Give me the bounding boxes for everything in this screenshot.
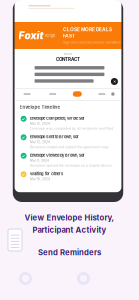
staticText: Envelope Timeline [20, 105, 61, 110]
staticText: Envelope Completed, Wrote sdr [30, 116, 85, 121]
staticText: Recipient opened the envelope on a mobil… [30, 164, 112, 167]
button[interactable]: ✓ [15, 169, 121, 188]
staticText: Mar 12, 2024 [30, 122, 50, 125]
staticText: Mar 12, 2024 [30, 140, 50, 144]
staticText: CONTRACT [56, 57, 80, 62]
staticText: ✓ [22, 135, 26, 140]
staticText: Sign and send documents anywhere [63, 41, 121, 44]
staticText: eSign [45, 33, 55, 38]
staticText: View Envelope History, [24, 213, 114, 222]
staticText: Envelope Viewed by Brown, sdr [30, 153, 85, 158]
staticText: Mar 10, 2024 [30, 177, 50, 181]
button[interactable]: ✓ [15, 132, 121, 151]
button[interactable]: Recipients [47, 91, 58, 97]
staticText: FAST [63, 33, 75, 39]
staticText: Envelope was completed by all recipients… [30, 127, 113, 130]
button[interactable]: More [96, 91, 107, 97]
button[interactable]: ✓ [15, 151, 121, 169]
staticText: Send Reminders [38, 248, 101, 257]
staticText: ✓ [22, 153, 26, 158]
button[interactable]: Close document [111, 78, 118, 85]
staticText: Foxit [19, 29, 44, 42]
staticText: Envelope Sent to Brown, sdr [30, 134, 79, 139]
staticText: ✓ [22, 116, 26, 121]
button[interactable]: Menu [111, 92, 114, 95]
staticText: ✕ [113, 79, 116, 84]
staticText: Participant Activity [32, 225, 106, 235]
staticText: CLOSE MORE DEALS [63, 27, 112, 32]
button[interactable]: Sign [73, 91, 82, 97]
staticText: Waiting for Others [30, 171, 63, 176]
staticText: DRAFT [63, 52, 72, 56]
staticText: ✓ [22, 172, 26, 177]
staticText: Mar 11, 2024 [30, 159, 49, 162]
staticText: Recipient viewed and signed the agreemen… [30, 145, 109, 149]
button[interactable]: ✓ [15, 114, 121, 132]
button[interactable]: Fields [22, 91, 33, 97]
